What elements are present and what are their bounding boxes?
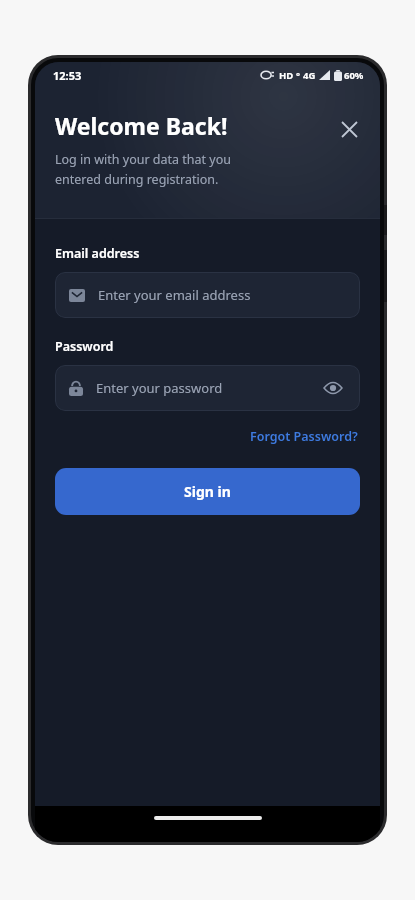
button[interactable]: Show password [320,375,346,401]
staticText: 60% [344,69,364,82]
button[interactable]: Close [332,112,366,146]
staticText: Log in with your data that you [55,151,232,168]
button[interactable]: Forgot Password? [248,425,360,448]
staticText: Enter your email address [98,286,346,304]
staticText: Enter your password [96,379,320,397]
staticText: ° [296,69,301,82]
button[interactable]: Email address field [55,272,360,318]
staticText: Email address [55,245,140,262]
button[interactable]: Sign in [55,468,360,515]
staticText: Forgot Password? [250,428,358,445]
staticText: Password [55,338,114,355]
staticText: Welcome Back! [55,110,228,141]
staticText: 12:53 [53,68,82,83]
staticText: entered during registration. [55,171,219,188]
button[interactable]: Password field [55,365,360,411]
staticText: Sign in [184,482,231,501]
staticText: 4G [303,69,316,82]
staticText: HD [279,69,294,82]
